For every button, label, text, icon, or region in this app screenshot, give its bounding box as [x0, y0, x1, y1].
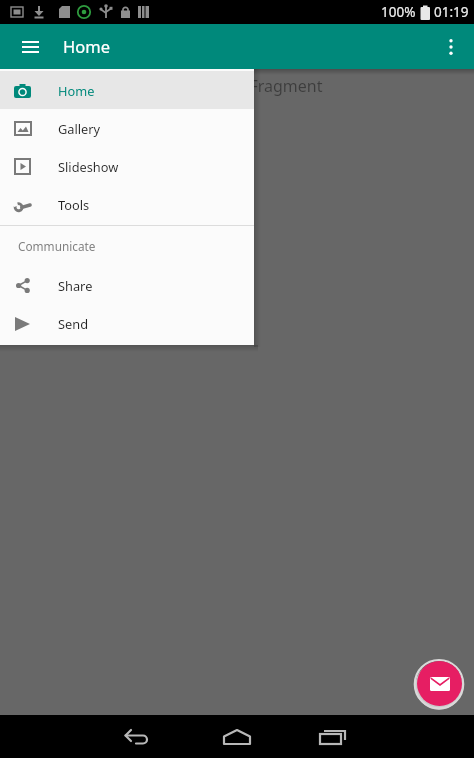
button[interactable]: Slideshow [0, 147, 254, 185]
staticText: Communicate [18, 238, 96, 254]
button[interactable]: Share [0, 266, 254, 304]
button[interactable] [436, 32, 466, 62]
button[interactable]: Tools [0, 185, 254, 223]
staticText: Gallery [58, 120, 101, 137]
staticText: Tools [58, 196, 90, 213]
button[interactable] [212, 715, 262, 758]
staticText: This is home Fragment [151, 75, 323, 97]
button[interactable] [14, 31, 46, 63]
button[interactable] [308, 715, 358, 758]
staticText: 100% [381, 3, 416, 21]
staticText: 01:19 [434, 3, 469, 21]
button[interactable] [112, 715, 162, 758]
staticText: Home [63, 35, 110, 57]
button[interactable]: Home [0, 71, 254, 109]
staticText: Share [58, 277, 93, 294]
staticText: Send [58, 315, 89, 332]
staticText: Home [58, 82, 95, 99]
button[interactable]: Send [0, 304, 254, 342]
button[interactable] [417, 661, 462, 706]
staticText: Slideshow [58, 158, 119, 175]
button[interactable]: Gallery [0, 109, 254, 147]
